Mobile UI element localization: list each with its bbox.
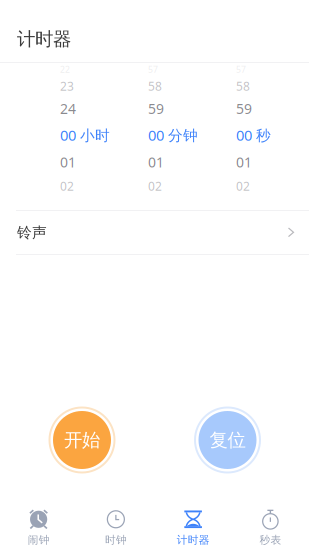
staticText: 58 — [236, 78, 250, 94]
staticText: 秒表 — [259, 533, 281, 547]
staticText: 59 — [236, 99, 252, 118]
button[interactable]: 铃声 — [0, 211, 309, 254]
staticText: 02 — [60, 178, 74, 194]
staticText: 58 — [148, 78, 162, 94]
staticText: 01 — [60, 152, 76, 172]
staticText: 计时器 — [17, 27, 71, 51]
staticText: 01 — [236, 152, 252, 172]
button[interactable]: 开始 — [47, 405, 117, 475]
staticText: 闹钟 — [28, 533, 50, 547]
staticText: 00 分钟 — [148, 125, 198, 145]
button[interactable]: 闹钟 — [0, 498, 77, 550]
staticText: 02 — [148, 178, 162, 194]
staticText: 时钟 — [105, 533, 127, 547]
staticText: 57 — [236, 64, 246, 75]
button[interactable]: 计时器 — [154, 498, 232, 550]
button[interactable]: 时钟 — [77, 498, 154, 550]
staticText: 00 秒 — [236, 125, 271, 145]
staticText: 计时器 — [177, 533, 210, 547]
staticText: 复位 — [209, 428, 245, 452]
staticText: 铃声 — [17, 223, 47, 242]
staticText: 01 — [148, 152, 164, 172]
staticText: 开始 — [64, 428, 100, 452]
staticText: 02 — [236, 178, 250, 194]
staticText: 59 — [148, 99, 164, 118]
button[interactable]: 秒表 — [232, 498, 309, 550]
staticText: 57 — [148, 64, 158, 75]
button[interactable]: 复位 — [192, 405, 262, 475]
staticText: 22 — [60, 64, 70, 75]
staticText: 23 — [60, 78, 74, 94]
staticText: 24 — [60, 99, 76, 118]
staticText: 00 小时 — [60, 125, 110, 145]
